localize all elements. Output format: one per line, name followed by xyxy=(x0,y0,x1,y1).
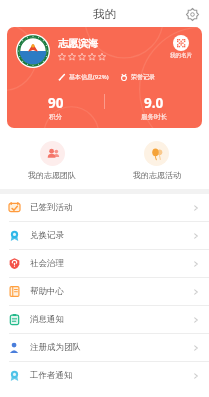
staticText: 积分 xyxy=(49,113,62,121)
staticText: 荣誉记录 xyxy=(131,73,155,81)
staticText: 工作者通知 xyxy=(30,370,73,381)
button[interactable]: 已签到活动 xyxy=(0,194,209,221)
button[interactable]: 消息通知 xyxy=(0,306,209,333)
button[interactable]: 帮助中心 xyxy=(0,278,209,305)
button[interactable]: 兑换记录 xyxy=(0,222,209,249)
staticText: 已签到活动 xyxy=(30,202,73,213)
staticText: 我的志愿活动 xyxy=(133,170,181,180)
staticText: 90 xyxy=(48,94,64,112)
staticText: 基本信息(92%) xyxy=(69,73,109,81)
staticText: 社会治理 xyxy=(30,258,64,269)
staticText: 我的志愿团队 xyxy=(28,170,76,180)
staticText: 消息通知 xyxy=(30,314,64,325)
button[interactable]: 志愿滨海 xyxy=(7,27,202,128)
button[interactable]: 社会治理 xyxy=(0,250,209,277)
button[interactable]: 我的志愿活动 xyxy=(104,138,209,183)
button[interactable]: 我的志愿团队 xyxy=(0,138,104,183)
staticText: 志愿滨海 xyxy=(58,37,98,50)
staticText: 帮助中心 xyxy=(30,286,64,297)
staticText: 我的名片 xyxy=(170,52,192,59)
button[interactable]: 注册成为团队 xyxy=(0,334,209,361)
button[interactable]: 工作者通知 xyxy=(0,362,209,389)
staticText: 兑换记录 xyxy=(30,230,64,241)
staticText: 注册成为团队 xyxy=(30,342,81,353)
staticText: 服务时长 xyxy=(141,113,167,121)
button[interactable]: 我的名片 xyxy=(168,34,194,60)
button[interactable]: Settings xyxy=(181,3,203,25)
staticText: 我的 xyxy=(93,7,116,21)
staticText: 9.0 xyxy=(144,94,164,112)
